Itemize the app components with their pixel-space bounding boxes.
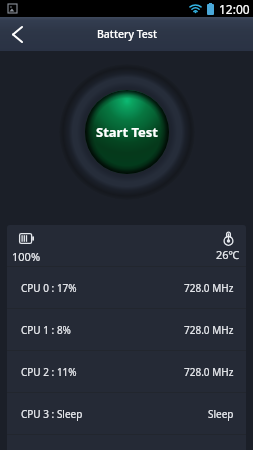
button[interactable]: Back bbox=[0, 17, 34, 51]
staticText: CPU 1 : 8% bbox=[21, 323, 71, 337]
button[interactable]: Start Test bbox=[59, 64, 195, 200]
staticText: 26℃ bbox=[216, 247, 240, 262]
button[interactable]: CPU 0 : 17% bbox=[7, 267, 246, 308]
staticText: Battery Test bbox=[97, 27, 157, 41]
button[interactable]: Temperature bbox=[216, 231, 240, 262]
button[interactable]: Battery level bbox=[12, 233, 41, 264]
staticText: 12:00 bbox=[219, 1, 250, 17]
button[interactable]: CPU 3 : Sleep bbox=[7, 393, 246, 434]
button[interactable]: CPU 2 : 11% bbox=[7, 351, 246, 392]
staticText: Start Test bbox=[96, 123, 158, 141]
button[interactable]: CPU 1 : 8% bbox=[7, 309, 246, 350]
staticText: CPU 3 : Sleep bbox=[21, 407, 83, 421]
staticText: 100% bbox=[12, 249, 41, 264]
staticText: CPU 2 : 11% bbox=[21, 365, 77, 379]
staticText: CPU 0 : 17% bbox=[21, 281, 77, 295]
staticText: 728.0 MHz bbox=[184, 281, 234, 295]
staticText: Sleep bbox=[208, 407, 234, 421]
staticText: 728.0 MHz bbox=[184, 323, 234, 337]
staticText: 728.0 MHz bbox=[184, 365, 234, 379]
